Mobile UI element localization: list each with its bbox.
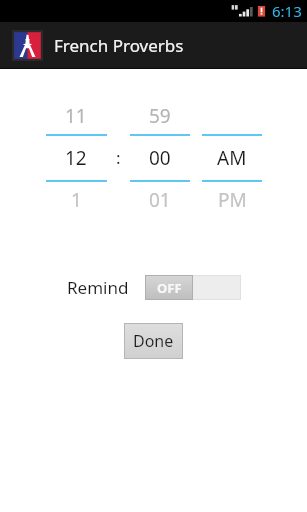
button[interactable]: AM or PM <box>202 98 262 218</box>
staticText: 59 <box>149 103 171 129</box>
staticText: : <box>116 146 121 169</box>
staticText: 00 <box>149 145 171 171</box>
button[interactable]: Done <box>124 323 183 359</box>
button[interactable]: Hour <box>45 98 107 218</box>
other: App icon <box>12 30 43 61</box>
staticText: PM <box>218 187 247 213</box>
staticText: 6:13 <box>272 1 302 21</box>
staticText: 01 <box>149 187 171 213</box>
staticText: Remind <box>67 276 129 299</box>
staticText: Done <box>133 330 174 352</box>
staticText: 12 <box>65 145 87 171</box>
staticText: 1 <box>71 187 82 213</box>
staticText: 11 <box>65 103 87 129</box>
staticText: French Proverbs <box>54 34 184 57</box>
button[interactable]: Reminder toggle, off <box>145 275 241 300</box>
staticText: OFF <box>157 279 182 297</box>
button[interactable]: Minute <box>129 98 190 218</box>
staticText: AM <box>217 145 247 171</box>
